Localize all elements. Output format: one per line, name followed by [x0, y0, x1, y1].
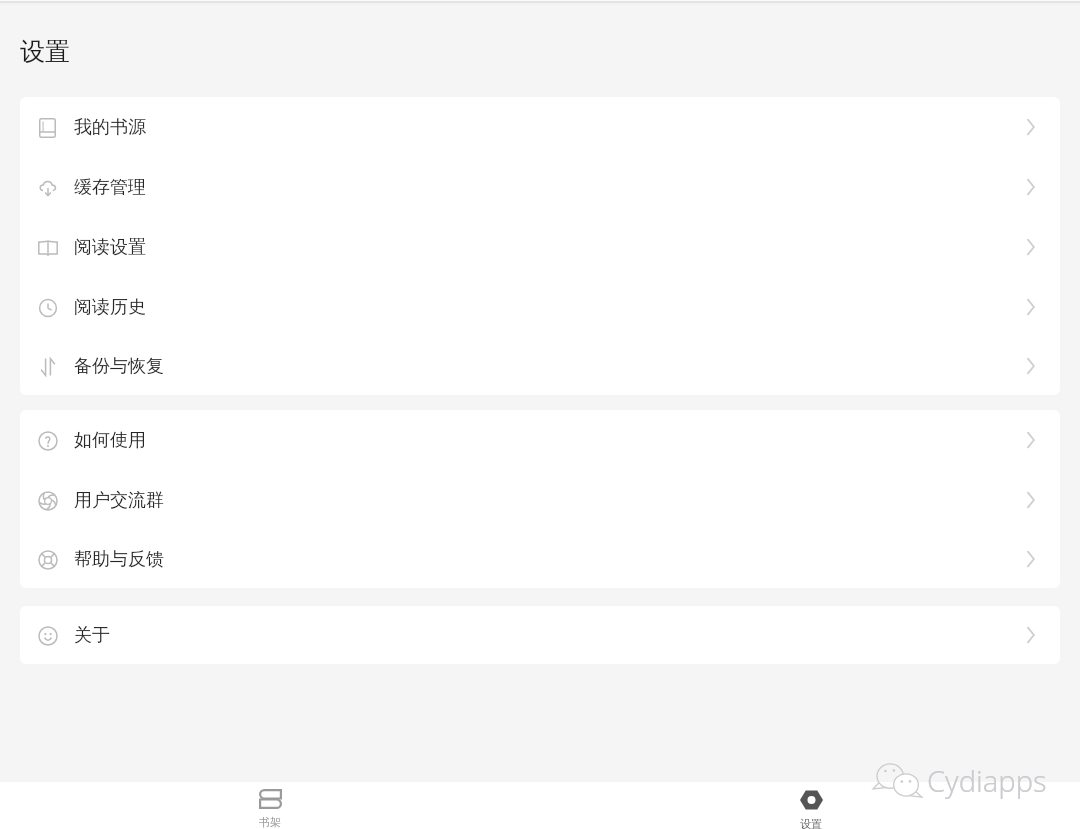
button[interactable]: 帮助与反馈: [20, 530, 1060, 588]
staticText: 如何使用: [74, 429, 146, 452]
button[interactable]: 备份与恢复: [20, 337, 1060, 395]
button[interactable]: 关于: [20, 606, 1060, 664]
button[interactable]: 我的书源: [20, 97, 1060, 157]
staticText: Cydiapps: [927, 761, 1047, 800]
staticText: 备份与恢复: [74, 355, 164, 378]
button[interactable]: 阅读历史: [20, 277, 1060, 337]
staticText: 缓存管理: [74, 176, 146, 199]
button[interactable]: 设置: [540, 782, 1080, 829]
button[interactable]: 阅读设置: [20, 217, 1060, 277]
staticText: 我的书源: [74, 116, 146, 139]
staticText: 设置: [20, 36, 70, 67]
staticText: 书架: [259, 815, 281, 829]
staticText: 阅读历史: [74, 296, 146, 319]
button[interactable]: 用户交流群: [20, 470, 1060, 530]
button[interactable]: 书架: [0, 782, 540, 829]
staticText: 阅读设置: [74, 236, 146, 259]
staticText: 设置: [800, 817, 822, 829]
button[interactable]: 如何使用: [20, 410, 1060, 470]
staticText: 用户交流群: [74, 489, 164, 512]
staticText: 帮助与反馈: [74, 548, 164, 571]
staticText: 关于: [74, 624, 110, 647]
button[interactable]: 缓存管理: [20, 157, 1060, 217]
